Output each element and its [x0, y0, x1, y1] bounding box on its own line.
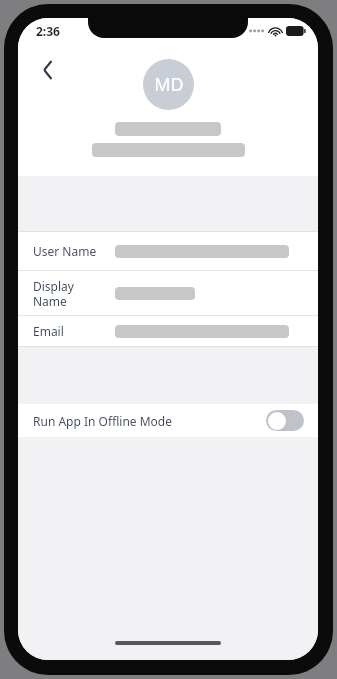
button[interactable]: Run App In Offline Mode	[18, 404, 318, 437]
other: Offline mode toggle	[266, 410, 304, 431]
staticText: User Name	[33, 243, 97, 259]
button[interactable]: User Name	[18, 232, 318, 270]
staticText: Email	[33, 323, 64, 339]
staticText: 2:36	[36, 23, 60, 39]
button[interactable]: Back	[28, 50, 68, 90]
button[interactable]: Display Name	[18, 271, 318, 315]
button[interactable]: MD	[143, 59, 194, 110]
button[interactable]: Email	[18, 316, 318, 346]
staticText: Run App In Offline Mode	[33, 413, 266, 429]
staticText: MD	[154, 72, 184, 97]
staticText: Display Name	[33, 278, 74, 309]
